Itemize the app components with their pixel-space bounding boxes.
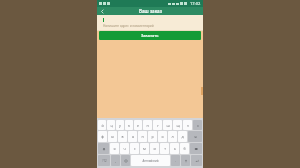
button[interactable]: р (148, 131, 157, 142)
staticText: о (161, 134, 164, 139)
button[interactable]: о (158, 131, 167, 142)
staticText: ?12 (102, 159, 107, 163)
staticText: я (113, 146, 116, 151)
button[interactable]: з (183, 120, 192, 130)
button[interactable]: Globe (121, 155, 130, 166)
button[interactable]: ф (98, 131, 107, 142)
staticText: й (101, 123, 104, 128)
button[interactable]: ?12 (98, 155, 110, 166)
button[interactable]: г (153, 120, 162, 130)
staticText: е (137, 123, 139, 128)
button[interactable]: д (178, 131, 187, 142)
button[interactable]: и (150, 143, 159, 154)
staticText: л (171, 134, 174, 139)
staticText: р (151, 134, 154, 139)
button[interactable]: п (138, 131, 147, 142)
button[interactable]: т (160, 143, 169, 154)
staticText: ч (123, 146, 126, 151)
staticText: и (153, 146, 156, 151)
staticText: Ваш заказ (139, 8, 162, 14)
staticText: 17:02 (190, 1, 201, 6)
staticText: ц (110, 123, 113, 128)
button[interactable]: а (128, 131, 137, 142)
button[interactable]: Shift (98, 143, 109, 154)
button[interactable]: Back (98, 7, 106, 15)
staticText: т (164, 146, 166, 151)
staticText: Заказать (141, 33, 159, 38)
button[interactable]: л (168, 131, 177, 142)
staticText: щ (176, 123, 180, 128)
button[interactable]: Напишите адрес и комментарий (97, 15, 203, 31)
button[interactable]: Заказать (99, 31, 201, 40)
staticText: х (197, 123, 199, 128)
staticText: а (132, 134, 134, 139)
button[interactable]: х (193, 120, 202, 130)
staticText: с (134, 146, 136, 151)
button[interactable]: ы (108, 131, 117, 142)
button[interactable]: й (98, 120, 106, 130)
staticText: н (146, 123, 149, 128)
button[interactable]: ь (170, 143, 179, 154)
staticText: в (121, 134, 124, 139)
button[interactable]: н (143, 120, 152, 130)
staticText: . (175, 158, 176, 163)
button[interactable]: в (118, 131, 127, 142)
staticText: ы (111, 134, 114, 139)
button[interactable]: м (140, 143, 149, 154)
staticText: м (143, 146, 146, 151)
button[interactable]: ш (163, 120, 172, 130)
button[interactable]: Английский (131, 155, 170, 166)
staticText: п (141, 134, 144, 139)
staticText: ш (166, 123, 170, 128)
button[interactable]: ч (120, 143, 129, 154)
staticText: з (187, 123, 189, 128)
button[interactable]: с (130, 143, 139, 154)
button[interactable]: я (110, 143, 119, 154)
staticText: ж (194, 134, 197, 139)
button[interactable]: Enter (191, 155, 202, 166)
staticText: б (183, 146, 186, 151)
button[interactable]: е (134, 120, 142, 130)
button[interactable]: Mic (181, 155, 190, 166)
button[interactable]: у (116, 120, 124, 130)
staticText: к (128, 123, 130, 128)
button[interactable]: ж (188, 131, 202, 142)
staticText: ф (101, 134, 104, 139)
button[interactable]: к (125, 120, 133, 130)
staticText: ь (174, 146, 176, 151)
staticText: , (115, 158, 116, 163)
staticText: д (181, 134, 184, 139)
button[interactable]: б (180, 143, 189, 154)
staticText: Напишите адрес и комментарий (103, 24, 154, 28)
button[interactable]: Backspace (190, 143, 202, 154)
staticText: Английский (142, 159, 159, 163)
staticText: г (157, 123, 159, 128)
staticText: у (119, 123, 121, 128)
button[interactable]: ц (107, 120, 115, 130)
button[interactable]: щ (173, 120, 182, 130)
